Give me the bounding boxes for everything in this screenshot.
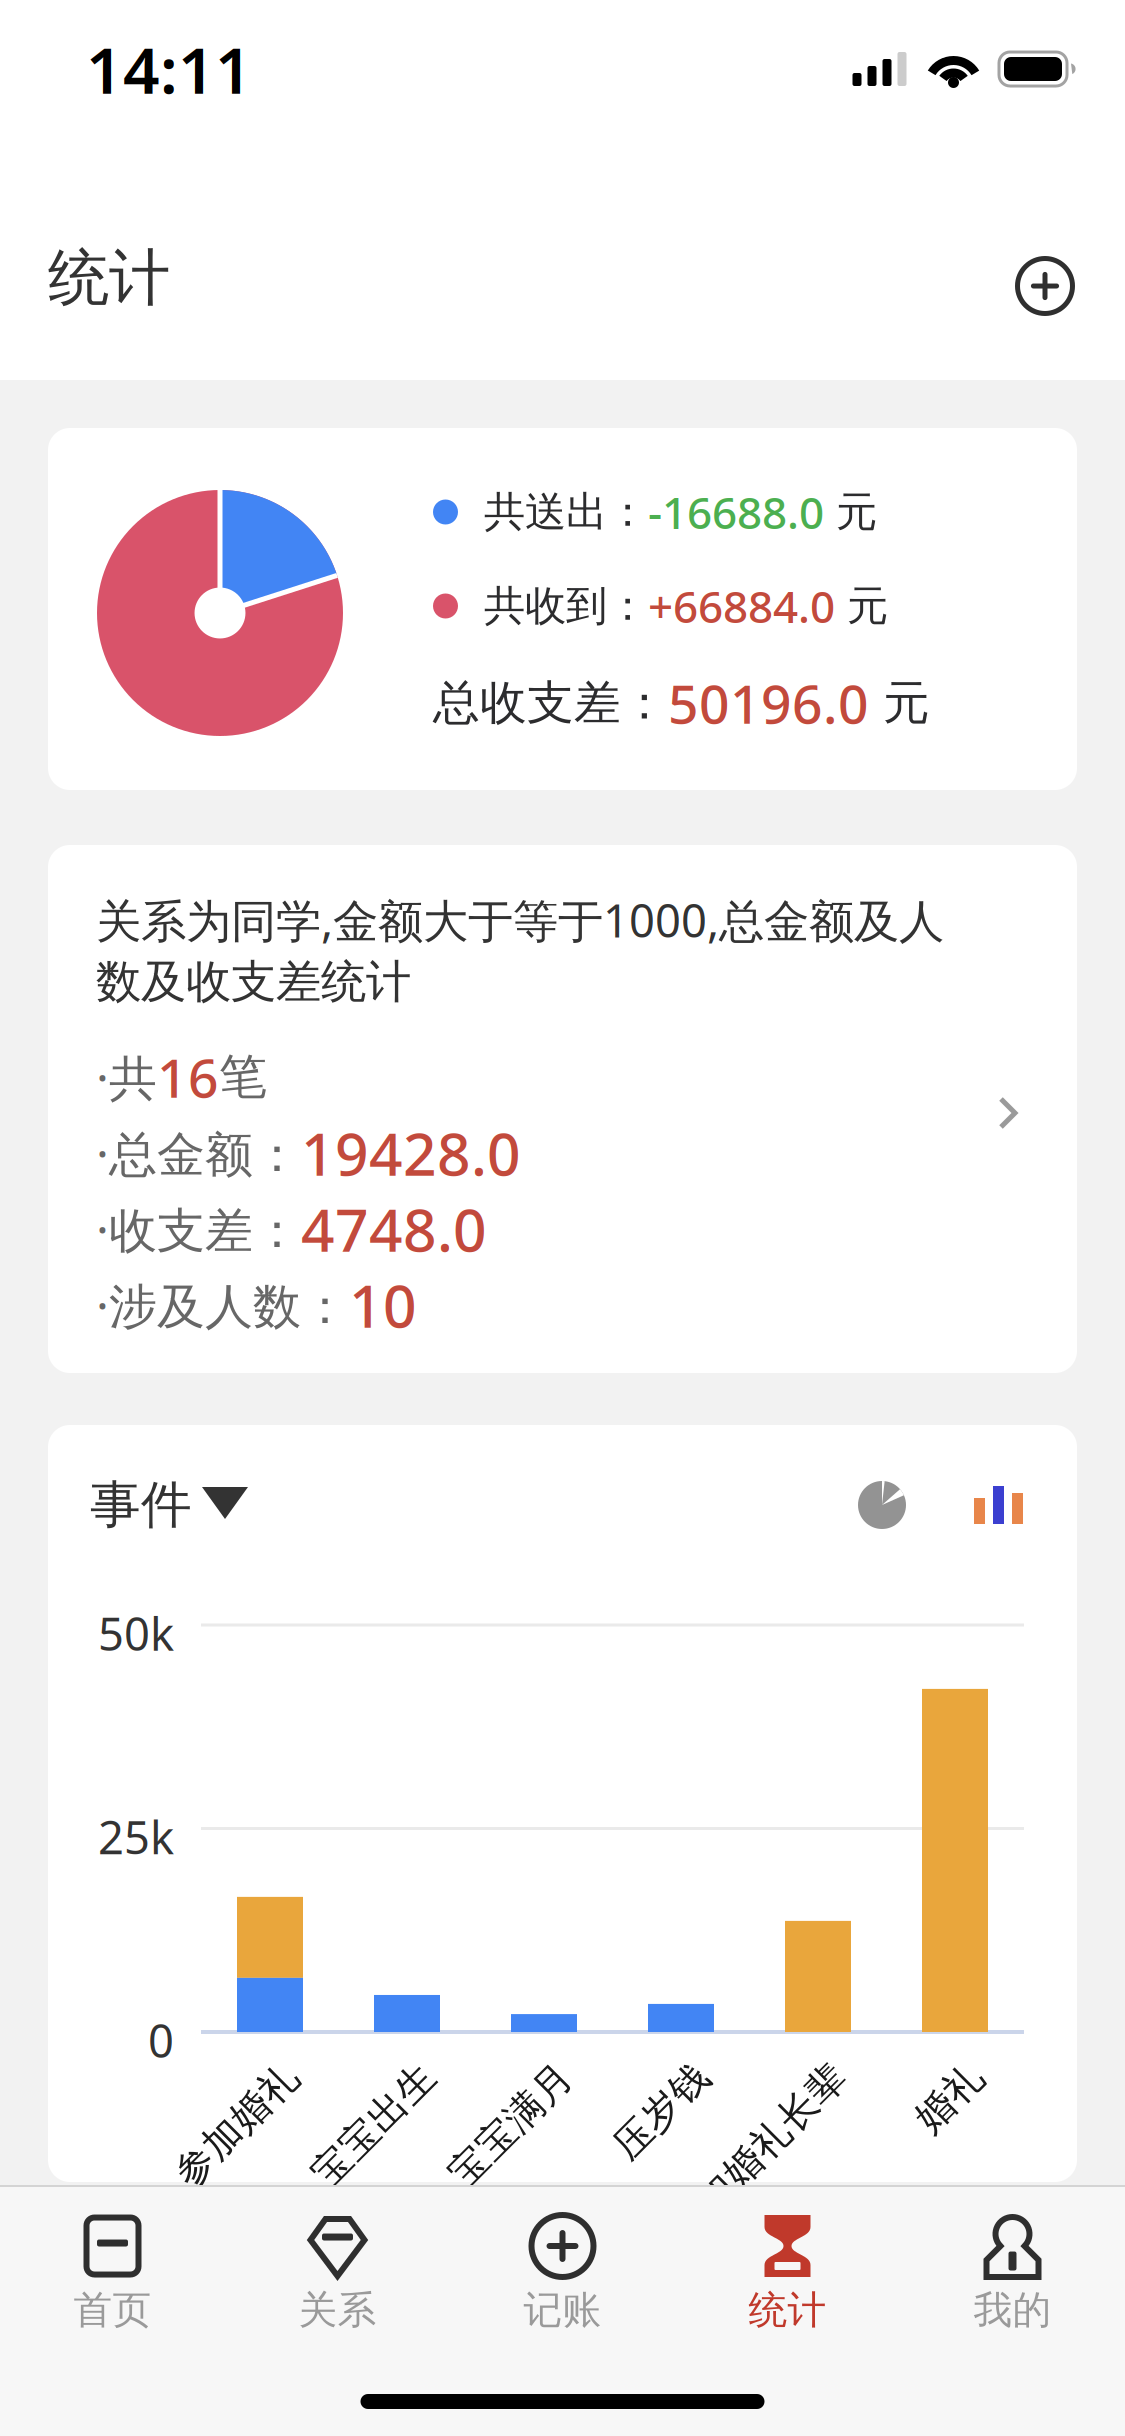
staticText: 我的 [973, 2286, 1051, 2334]
button[interactable]: 我的 [900, 2206, 1125, 2336]
button[interactable]: 关系 [225, 2206, 450, 2336]
staticText: 0 [148, 2010, 174, 2070]
staticText: 14:11 [86, 26, 252, 111]
staticText: 参加婚礼 [136, 2046, 292, 2094]
staticText: 共送出： [484, 487, 648, 537]
staticText: 元 [835, 581, 888, 631]
staticText: 统计 [48, 240, 170, 316]
staticText: 4748.0 [301, 1190, 487, 1268]
button[interactable]: 统计 [675, 2206, 900, 2336]
staticText: 宝宝满月 [410, 2046, 566, 2094]
staticText: 宝宝出生 [273, 2046, 429, 2094]
staticText: 压岁钱 [586, 2046, 703, 2094]
staticText: 记账 [523, 2286, 601, 2334]
staticText: 关系为同学,金额大于等于1000,总金额及人 [96, 890, 944, 950]
staticText: 共收到： [484, 581, 648, 631]
staticText: 婚礼 [899, 2046, 977, 2094]
button[interactable]: 记账 [450, 2206, 675, 2336]
staticText: 首页 [73, 2286, 151, 2334]
staticText: 统计 [748, 2286, 826, 2334]
button[interactable]: 关系为同学,金额大于等于1000,总金额及人 [48, 845, 1077, 1373]
staticText: 笔 [219, 1047, 267, 1106]
button[interactable]: Bar chart [914, 1478, 1031, 1532]
staticText: 数及收支差统计 [96, 954, 411, 1010]
staticText: 元 [869, 674, 930, 732]
staticText: 10 [349, 1266, 417, 1344]
staticText: 参加婚礼长辈 [606, 2046, 840, 2094]
staticText: 19428.0 [301, 1114, 521, 1192]
staticText: ·收支差： [96, 1197, 301, 1261]
staticText: +66884.0 [648, 577, 835, 635]
staticText: 25k [98, 1806, 174, 1867]
staticText: ·总金额： [96, 1121, 301, 1185]
staticText: ·涉及人数： [96, 1273, 349, 1337]
staticText: 50k [98, 1603, 174, 1663]
button[interactable]: Pie chart [850, 1473, 914, 1537]
button[interactable]: 首页 [0, 2206, 225, 2336]
staticText: 16 [157, 1042, 219, 1112]
staticText: -16688.0 [648, 483, 824, 541]
staticText: 50196.0 [668, 668, 869, 738]
staticText: ·共 [96, 1045, 157, 1109]
button[interactable]: 事件 [90, 1469, 248, 1541]
staticText: 元 [824, 487, 877, 537]
staticText: 总收支差： [433, 674, 668, 732]
button[interactable]: Add [1001, 215, 1089, 303]
staticText: 关系 [298, 2286, 376, 2334]
staticText: 事件 [90, 1474, 192, 1536]
